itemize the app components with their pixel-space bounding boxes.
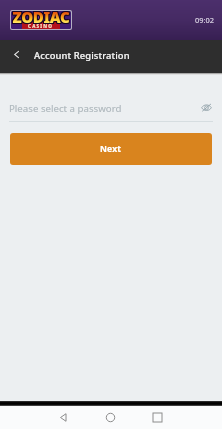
- staticText: ZODIAC: [12, 6, 70, 26]
- staticText: ZODIAC: [12, 7, 70, 27]
- button[interactable]: Next: [10, 133, 212, 165]
- button[interactable]: Back: [0, 40, 33, 73]
- button[interactable]: Back: [51, 406, 76, 429]
- staticText: Please select a password: [9, 102, 122, 115]
- staticText: ZODIAC: [11, 7, 69, 27]
- button[interactable]: Home: [98, 406, 123, 429]
- staticText: Next: [100, 143, 122, 155]
- staticText: ZODIAC: [13, 6, 71, 26]
- button[interactable]: Recent apps: [145, 406, 170, 429]
- staticText: ZODIAC: [13, 7, 71, 27]
- staticText: ZODIAC: [13, 8, 71, 28]
- button[interactable]: Show password: [197, 98, 215, 116]
- staticText: ZODIAC: [11, 8, 69, 28]
- staticText: Account Registration: [34, 49, 130, 62]
- staticText: ZODIAC: [11, 6, 69, 26]
- staticText: ZODIAC: [12, 8, 70, 28]
- button[interactable]: Please select a password: [9, 97, 213, 121]
- staticText: CASINO: [28, 23, 54, 29]
- staticText: 09:02: [195, 15, 214, 25]
